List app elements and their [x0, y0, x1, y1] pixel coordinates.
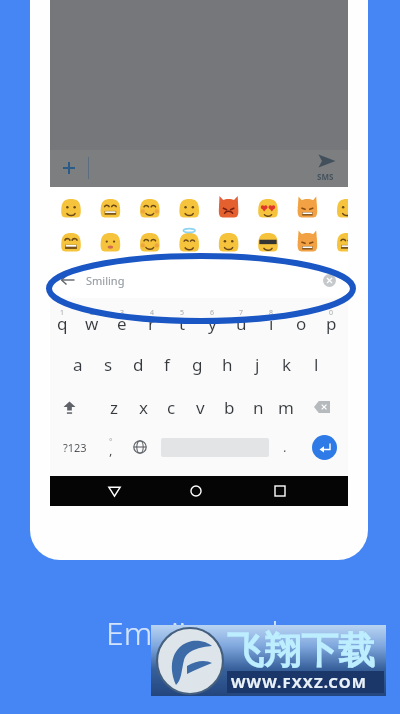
- staticText: Emoji search: [106, 611, 291, 655]
- staticText: w: [85, 312, 99, 335]
- button[interactable]: k: [272, 347, 302, 381]
- staticText: 6: [210, 308, 215, 318]
- button[interactable]: l: [301, 347, 331, 381]
- staticText: q: [57, 312, 68, 335]
- staticText: o: [296, 312, 307, 335]
- staticText: v: [196, 396, 205, 419]
- button[interactable]: Home: [180, 476, 212, 506]
- button[interactable]: w: [77, 306, 107, 340]
- button[interactable]: a: [63, 347, 93, 381]
- staticText: m: [278, 396, 294, 419]
- staticText: n: [253, 396, 264, 419]
- button[interactable]: Backspace: [307, 390, 337, 424]
- staticText: Smiling: [86, 273, 125, 288]
- button[interactable]: f: [152, 347, 182, 381]
- button[interactable]: Back: [98, 476, 130, 506]
- staticText: a: [73, 353, 83, 376]
- button[interactable]: b: [214, 390, 244, 424]
- staticText: 1: [60, 308, 65, 318]
- staticText: f: [164, 353, 170, 376]
- button[interactable]: Shift: [54, 390, 84, 424]
- button[interactable]: i: [256, 306, 286, 340]
- staticText: WWW.FXXZ.COM: [231, 672, 368, 692]
- button[interactable]: ?123: [56, 430, 94, 464]
- button[interactable]: r: [137, 306, 167, 340]
- staticText: t: [179, 312, 186, 335]
- staticText: ,: [109, 441, 113, 459]
- button[interactable]: e: [107, 306, 137, 340]
- button[interactable]: .: [275, 430, 295, 464]
- staticText: s: [104, 353, 113, 376]
- staticText: ?123: [63, 440, 87, 455]
- button[interactable]: v: [185, 390, 215, 424]
- staticText: 飞翔下载: [227, 627, 375, 674]
- staticText: 5: [180, 308, 185, 318]
- staticText: SMS: [317, 171, 334, 182]
- staticText: 3: [120, 308, 125, 318]
- button[interactable]: Attach: [59, 158, 79, 178]
- button[interactable]: d: [123, 347, 153, 381]
- staticText: e: [117, 312, 127, 335]
- staticText: r: [148, 312, 156, 335]
- staticText: d: [133, 353, 144, 376]
- staticText: b: [224, 396, 235, 419]
- button[interactable]: o: [286, 306, 316, 340]
- button[interactable]: Send: [318, 154, 336, 168]
- staticText: y: [208, 312, 217, 335]
- staticText: 0: [329, 308, 334, 318]
- staticText: °: [109, 436, 113, 447]
- staticText: z: [110, 396, 118, 419]
- button[interactable]: Comma: [97, 430, 125, 464]
- button[interactable]: y: [197, 306, 227, 340]
- button[interactable]: g: [182, 347, 212, 381]
- button[interactable]: s: [93, 347, 123, 381]
- staticText: 2: [90, 308, 95, 318]
- button[interactable]: h: [212, 347, 242, 381]
- staticText: k: [282, 353, 292, 376]
- button[interactable]: t: [167, 306, 197, 340]
- button[interactable]: j: [242, 347, 272, 381]
- button[interactable]: z: [99, 390, 129, 424]
- staticText: u: [236, 312, 247, 335]
- staticText: .: [283, 438, 287, 456]
- button[interactable]: Language: [126, 430, 154, 464]
- staticText: g: [192, 353, 203, 376]
- button[interactable]: q: [47, 306, 77, 340]
- staticText: h: [222, 353, 233, 376]
- staticText: 8: [269, 308, 274, 318]
- button[interactable]: Recents: [264, 476, 296, 506]
- button[interactable]: n: [243, 390, 273, 424]
- staticText: 7: [239, 308, 244, 318]
- staticText: i: [269, 312, 274, 335]
- button[interactable]: m: [271, 390, 301, 424]
- button[interactable]: p: [316, 306, 346, 340]
- staticText: c: [167, 396, 176, 419]
- staticText: 9: [299, 308, 304, 318]
- button[interactable]: c: [156, 390, 186, 424]
- button[interactable]: Back: [60, 271, 76, 289]
- staticText: 4: [150, 308, 155, 318]
- staticText: x: [139, 396, 148, 419]
- button[interactable]: Clear: [323, 274, 336, 287]
- staticText: p: [326, 312, 337, 335]
- staticText: l: [314, 353, 319, 376]
- button[interactable]: Enter: [312, 435, 337, 460]
- button[interactable]: x: [128, 390, 158, 424]
- button[interactable]: u: [226, 306, 256, 340]
- staticText: j: [255, 353, 260, 376]
